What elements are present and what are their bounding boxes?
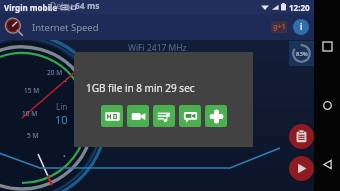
staticText: i (300, 21, 303, 33)
button[interactable]: Back (314, 151, 340, 177)
staticText: Lin (56, 101, 68, 112)
button[interactable]: Report (289, 124, 314, 149)
button[interactable]: g+1 (271, 21, 287, 33)
staticText: Internet Speed (32, 21, 99, 34)
staticText: 15 M (24, 86, 40, 95)
button[interactable]: Information (293, 19, 309, 35)
staticText: 20 M (47, 68, 63, 77)
staticText: 1GB file in 8 min 29 sec (86, 81, 195, 95)
button[interactable]: Video call (127, 105, 149, 127)
staticText: 83% (296, 50, 308, 58)
staticText: WiFi 2417 MHz (128, 42, 187, 54)
button[interactable]: Start test (289, 156, 314, 181)
button[interactable]: Video chat (179, 105, 201, 127)
button[interactable]: App icon (3, 16, 25, 38)
button[interactable]: High definition video (101, 105, 123, 127)
staticText: 5 M (27, 131, 39, 140)
button[interactable]: Recent apps (314, 33, 340, 59)
button[interactable]: Online gaming (205, 105, 227, 127)
button[interactable]: Battery 83 percent (289, 41, 314, 66)
staticText: 10 M (22, 109, 38, 118)
staticText: g+1 (273, 22, 286, 32)
staticText: Virgin mobile (4, 2, 58, 13)
button[interactable]: Home (314, 92, 340, 118)
button[interactable]: Music streaming (153, 105, 175, 127)
staticText: 10 (55, 112, 68, 127)
staticText: 64 ms (75, 0, 100, 12)
staticText: 12:20 (289, 2, 310, 13)
staticText: Delay (50, 0, 75, 12)
